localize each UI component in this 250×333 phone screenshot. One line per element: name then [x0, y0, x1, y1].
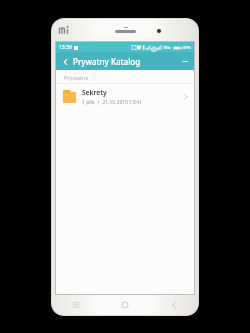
- button[interactable]: More options: [178, 55, 191, 68]
- button[interactable]: Sekrety: [56, 84, 194, 109]
- button[interactable]: Home: [100, 295, 149, 315]
- button[interactable]: Prywatne: [63, 71, 97, 83]
- staticText: TMo: [163, 45, 172, 50]
- button[interactable]: Back: [149, 295, 198, 315]
- staticText: 13:39: [59, 44, 72, 51]
- staticText: 89%: [183, 45, 191, 50]
- staticText: Sekrety: [82, 88, 107, 97]
- button[interactable]: Recents: [52, 295, 100, 315]
- staticText: Prywatny Katalog: [73, 56, 141, 67]
- button[interactable]: Back: [59, 55, 72, 68]
- staticText: 1 plik | 21.10.2015 13:41: [82, 99, 143, 106]
- staticText: Prywatne: [64, 74, 89, 81]
